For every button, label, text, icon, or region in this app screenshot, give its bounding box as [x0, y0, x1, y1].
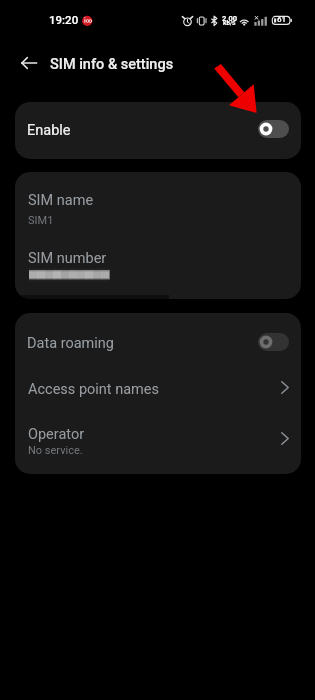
button[interactable]: Enable switch	[258, 120, 289, 138]
staticText: KB/S	[223, 20, 236, 26]
button[interactable]: SIM number	[15, 235, 301, 299]
button[interactable]: Access point names	[15, 365, 301, 410]
staticText: Operator	[28, 426, 85, 443]
button[interactable]: Operator	[15, 410, 301, 474]
staticText: 19:20	[49, 13, 79, 26]
button[interactable]: SIM name	[15, 172, 301, 235]
staticText: SIM name	[28, 192, 94, 209]
staticText: SIM1	[28, 214, 54, 227]
staticText: SIM info & settings	[50, 56, 174, 73]
staticText: Data roaming	[27, 335, 114, 352]
button[interactable]: Back	[10, 44, 47, 82]
staticText: No service.	[28, 444, 83, 457]
staticText: SIM number	[28, 250, 107, 267]
button[interactable]: Data roaming	[15, 313, 301, 365]
button[interactable]: Data roaming switch	[258, 333, 289, 351]
staticText: Access point names	[28, 381, 159, 398]
staticText: 2.00	[222, 14, 238, 23]
staticText: 61	[277, 15, 287, 24]
button[interactable]: Enable	[15, 102, 301, 159]
staticText: Enable	[27, 122, 71, 139]
